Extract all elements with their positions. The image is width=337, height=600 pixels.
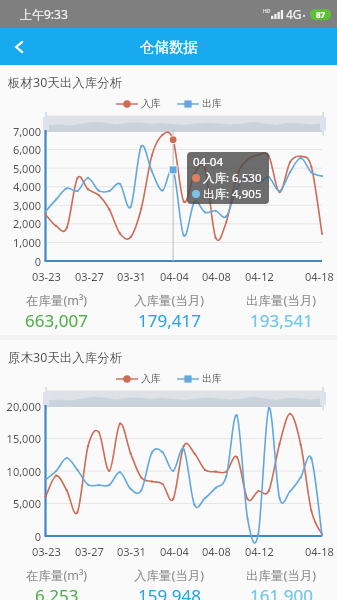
staticText: 仓储数据 (140, 38, 198, 56)
staticText: 3,000 (12, 198, 41, 213)
staticText: 出库 (202, 372, 222, 385)
button[interactable]: Back (0, 28, 37, 65)
staticText: HD (263, 8, 271, 15)
staticText: 03-31 (117, 544, 146, 559)
staticText: 4,000 (12, 179, 41, 194)
staticText: 5,000 (12, 161, 41, 176)
staticText: 03-23 (32, 544, 61, 559)
staticText: 04-08 (202, 269, 231, 284)
staticText: 03-27 (75, 269, 104, 284)
staticText: 入库量(当月) (134, 292, 205, 309)
staticText: 179,417 (138, 309, 201, 332)
staticText: 04-12 (245, 269, 274, 284)
button[interactable]: 在库量(m³) (0, 567, 113, 600)
staticText: 6.253 (35, 584, 79, 600)
staticText: 出库量(当月) (246, 292, 317, 309)
staticText: 161.900 (250, 584, 313, 600)
staticText: 193,541 (250, 309, 313, 332)
staticText: 2,000 (12, 216, 41, 231)
staticText: 出库: 4,905 (203, 186, 262, 202)
staticText: 入库 (141, 97, 161, 110)
staticText: 出库 (202, 97, 222, 110)
staticText: 04-18 (305, 544, 334, 559)
staticText: 04-12 (245, 544, 274, 559)
staticText: 0 (34, 254, 41, 269)
staticText: 1,000 (12, 235, 41, 250)
staticText: 04-08 (202, 544, 231, 559)
staticText: 04-04 (193, 154, 224, 170)
button[interactable]: 出库量(当月) (225, 567, 337, 600)
staticText: 入库: 6,530 (203, 170, 262, 186)
staticText: 0 (34, 529, 41, 544)
staticText: 7,000 (12, 124, 41, 139)
staticText: 03-27 (75, 544, 104, 559)
staticText: 04-18 (305, 269, 334, 284)
staticText: 04-04 (160, 544, 189, 559)
button[interactable]: 入库量(当月) (113, 292, 225, 332)
staticText: 上午9:33 (20, 6, 68, 22)
button[interactable]: 出库量(当月) (225, 292, 337, 332)
staticText: 159.948 (138, 584, 201, 600)
staticText: 在库量(m³) (26, 292, 88, 309)
staticText: 15,000 (6, 431, 41, 446)
staticText: 板材30天出入库分析 (8, 74, 123, 91)
staticText: 入库量(当月) (134, 567, 205, 584)
button[interactable]: 在库量(m³) (0, 292, 113, 332)
staticText: 5,000 (12, 496, 41, 511)
staticText: 原木30天出入库分析 (8, 349, 123, 366)
staticText: 4G (286, 6, 302, 22)
staticText: 在库量(m³) (26, 567, 88, 584)
staticText: 04-04 (160, 269, 189, 284)
button[interactable]: 入库量(当月) (113, 567, 225, 600)
staticText: 6,000 (12, 142, 41, 157)
staticText: 03-31 (117, 269, 146, 284)
staticText: 87 (316, 9, 326, 20)
staticText: 663,007 (25, 309, 88, 332)
staticText: 入库 (141, 372, 161, 385)
staticText: 出库量(当月) (246, 567, 317, 584)
staticText: 03-23 (32, 269, 61, 284)
staticText: 20,000 (6, 399, 41, 414)
staticText: 10,000 (6, 464, 41, 479)
